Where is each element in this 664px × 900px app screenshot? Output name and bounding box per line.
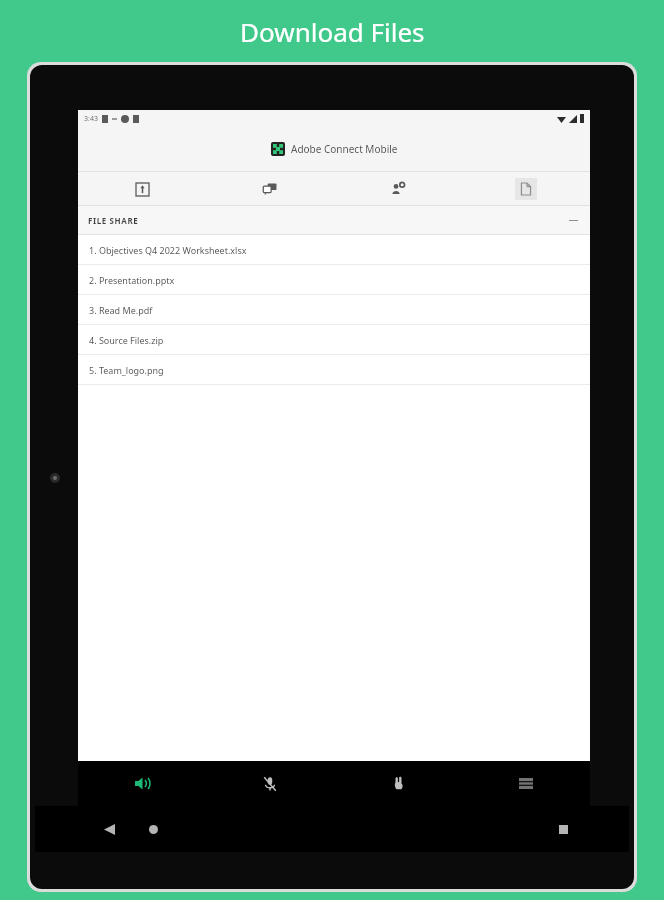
staticText: Adobe Connect Mobile: [291, 142, 398, 156]
button[interactable]: Speaker: [78, 761, 206, 806]
button[interactable]: Recent apps: [551, 817, 575, 841]
staticText: 1. Objectives Q4 2022 Worksheet.xlsx: [89, 244, 247, 256]
staticText: 3:43: [84, 114, 98, 124]
button[interactable]: Microphone muted: [206, 761, 334, 806]
staticText: 4. Source Files.zip: [89, 334, 164, 346]
button[interactable]: FILE SHARE: [78, 206, 590, 234]
staticText: 5. Team_logo.png: [89, 364, 164, 376]
button[interactable]: 5. Team_logo.png: [78, 355, 590, 384]
button[interactable]: Back: [97, 817, 121, 841]
button[interactable]: Share screen: [78, 172, 206, 205]
button[interactable]: 3. Read Me.pdf: [78, 295, 590, 324]
button[interactable]: 1. Objectives Q4 2022 Worksheet.xlsx: [78, 235, 590, 264]
button[interactable]: Files: [462, 172, 590, 205]
staticText: Download Files: [240, 14, 425, 49]
button[interactable]: Attendees: [334, 172, 462, 205]
button[interactable]: Chat: [206, 172, 334, 205]
button[interactable]: Layout menu: [462, 761, 590, 806]
button[interactable]: 4. Source Files.zip: [78, 325, 590, 354]
staticText: 2. Presentation.pptx: [89, 274, 175, 286]
button[interactable]: Home: [141, 817, 165, 841]
staticText: FILE SHARE: [88, 215, 139, 226]
button[interactable]: Raise hand: [334, 761, 462, 806]
staticText: 3. Read Me.pdf: [89, 304, 153, 316]
button[interactable]: 2. Presentation.pptx: [78, 265, 590, 294]
